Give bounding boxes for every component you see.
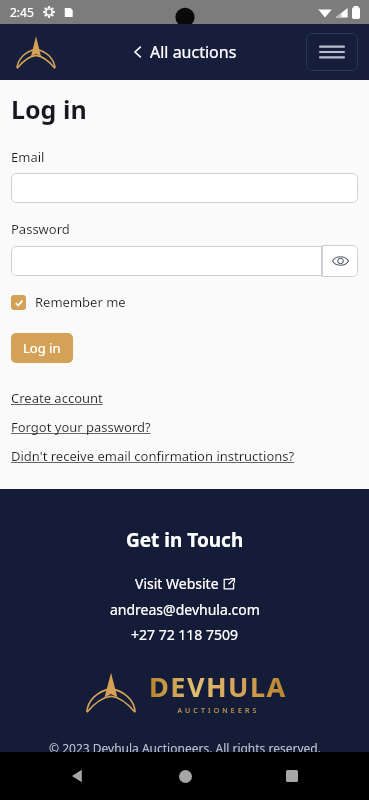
button[interactable]: Password field [11,246,322,276]
button[interactable]: Recent apps [275,759,309,793]
staticText: +27 72 118 7509 [131,625,239,644]
button[interactable]: Devhula home [12,32,60,72]
button[interactable]: Back [60,759,94,793]
staticText: Email [11,148,45,166]
staticText: 2:45 [10,4,34,20]
staticText: Get in Touch [126,527,244,553]
button[interactable]: Home [168,759,202,793]
staticText: Create account [11,389,103,407]
staticText: © 2023 Devhula Auctioneers. All rights r… [49,740,321,752]
button[interactable]: Didn't receive email confirmation instru… [11,447,295,465]
staticText: Forgot your password? [11,418,151,436]
button[interactable]: Create account [11,389,103,407]
button[interactable]: Show password [322,245,358,277]
button[interactable]: Forgot your password? [11,418,151,436]
staticText: Didn't receive email confirmation instru… [11,447,295,465]
button[interactable]: andreas@devhula.com [110,600,260,619]
button[interactable]: Email field [11,173,358,203]
button[interactable]: Devhula Auctioneers [83,668,287,716]
staticText: Log in [11,92,87,126]
staticText: All auctions [150,41,237,63]
staticText: Remember me [35,293,126,311]
button[interactable]: Log in [11,333,73,363]
staticText: Log in [23,339,61,357]
button[interactable]: Remember me [11,291,126,313]
button[interactable]: +27 72 118 7509 [131,625,239,644]
staticText: AUCTIONEERS [177,706,260,716]
staticText: Visit Website [135,574,219,593]
button[interactable]: All auctions [133,41,237,63]
button[interactable]: Open menu [306,33,358,71]
button[interactable]: Visit Website [135,573,235,594]
staticText: Password [11,220,70,238]
staticText: andreas@devhula.com [110,600,260,619]
staticText: DEVHULA [149,668,287,705]
